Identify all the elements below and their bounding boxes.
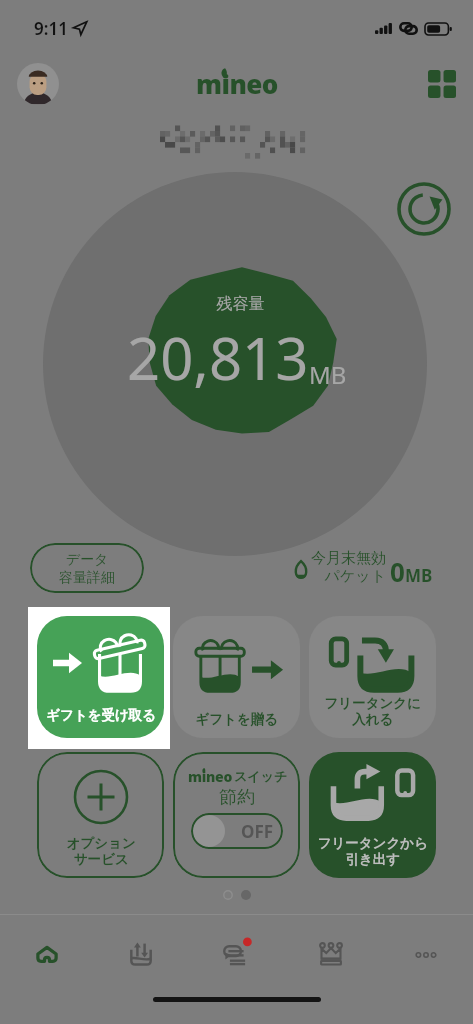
staticText: OFF [241,820,274,843]
staticText: 20,813 [127,318,309,397]
staticText: データ 容量詳細 [59,551,115,586]
staticText: MB [309,358,347,391]
button[interactable]: フリータンクから 引き出す [309,752,436,878]
staticText: 残容量 [4,294,473,314]
button[interactable]: データ 容量詳細 [30,543,144,593]
staticText: mineo [188,767,233,786]
staticText: フリータンクに 入れる [324,695,421,728]
staticText: ギフトを受け取る [46,707,156,724]
button[interactable]: ギフトを贈る [173,616,300,738]
staticText: mineo [196,66,278,100]
staticText: 9:11 [34,17,68,40]
staticText: スイッチ [234,768,288,784]
button[interactable]: Menu [428,70,456,98]
button[interactable]: ギフトを受け取る [37,616,164,738]
button[interactable]: Chat [188,914,283,996]
staticText: 0 [390,554,405,589]
staticText: フリータンクから 引き出す [317,835,428,868]
button[interactable]: オプション サービス [37,752,164,878]
staticText: 節約 [219,786,255,809]
button[interactable]: mineo [173,752,300,878]
button[interactable]: Rewards [283,914,378,996]
staticText: ギフトを贈る [195,711,278,728]
button[interactable]: Profile [17,63,59,105]
staticText: オプション サービス [66,835,136,868]
button[interactable]: Refresh [396,181,452,237]
button[interactable]: Home [0,914,94,996]
staticText: MB [405,564,433,587]
staticText: 今月末無効 パケット [308,549,386,586]
button[interactable]: フリータンクに 入れる [309,616,436,738]
button[interactable]: More [378,914,473,996]
button[interactable]: Data [94,914,188,996]
